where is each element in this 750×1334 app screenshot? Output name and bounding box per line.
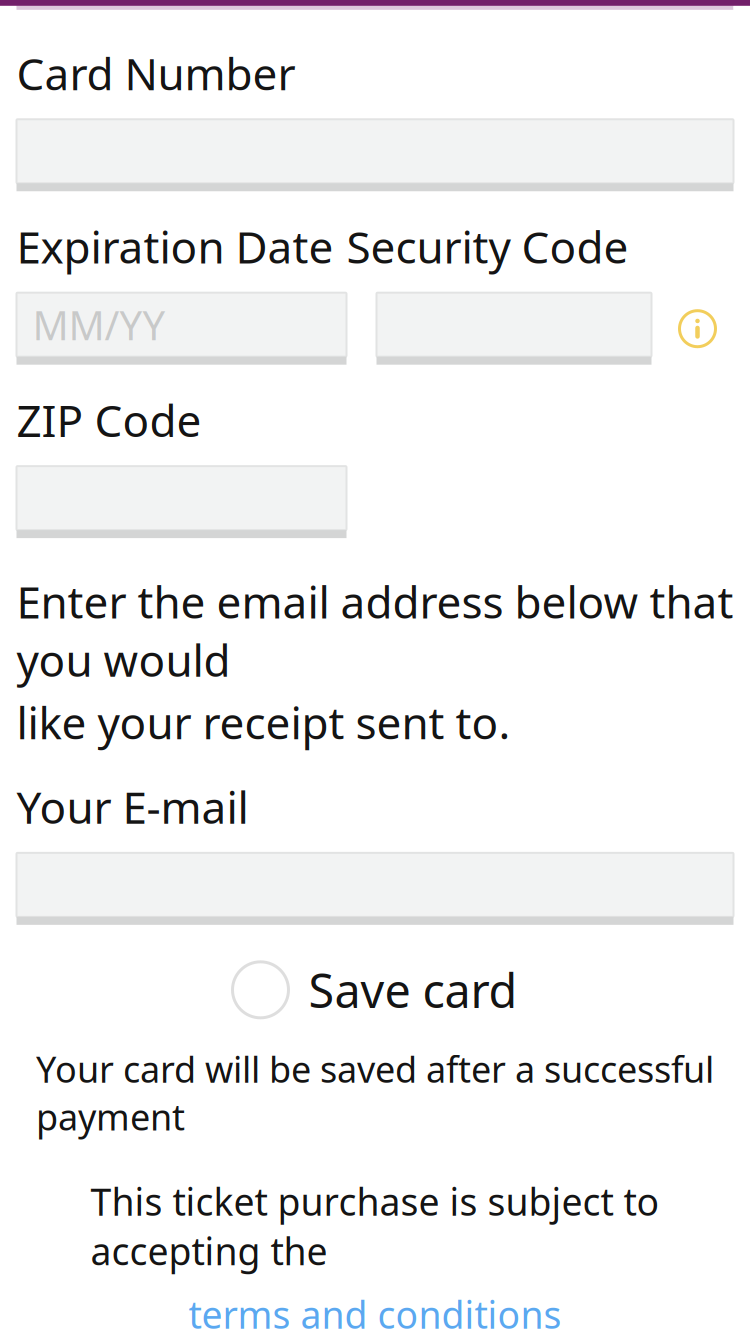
staticText: terms and conditions	[188, 1290, 561, 1334]
staticText: Security Code	[346, 217, 628, 276]
staticText: Expiration Date	[16, 217, 333, 276]
staticText: MM/YY	[32, 298, 165, 351]
button[interactable]: Security code help	[669, 301, 725, 357]
staticText: like your receipt sent to.	[16, 693, 510, 751]
staticText: ZIP Code	[16, 391, 201, 449]
button[interactable]: terms and conditions	[182, 1286, 567, 1334]
staticText: Card Number	[16, 44, 295, 102]
staticText: Enter the email address below that you w…	[16, 572, 733, 689]
staticText: Your E-mail	[16, 777, 248, 836]
button[interactable]: Save card	[232, 953, 517, 1027]
staticText: This ticket purchase is subject to accep…	[90, 1176, 659, 1276]
staticText: Save card	[308, 959, 517, 1021]
staticText: Your card will be saved after a successf…	[36, 1045, 714, 1140]
